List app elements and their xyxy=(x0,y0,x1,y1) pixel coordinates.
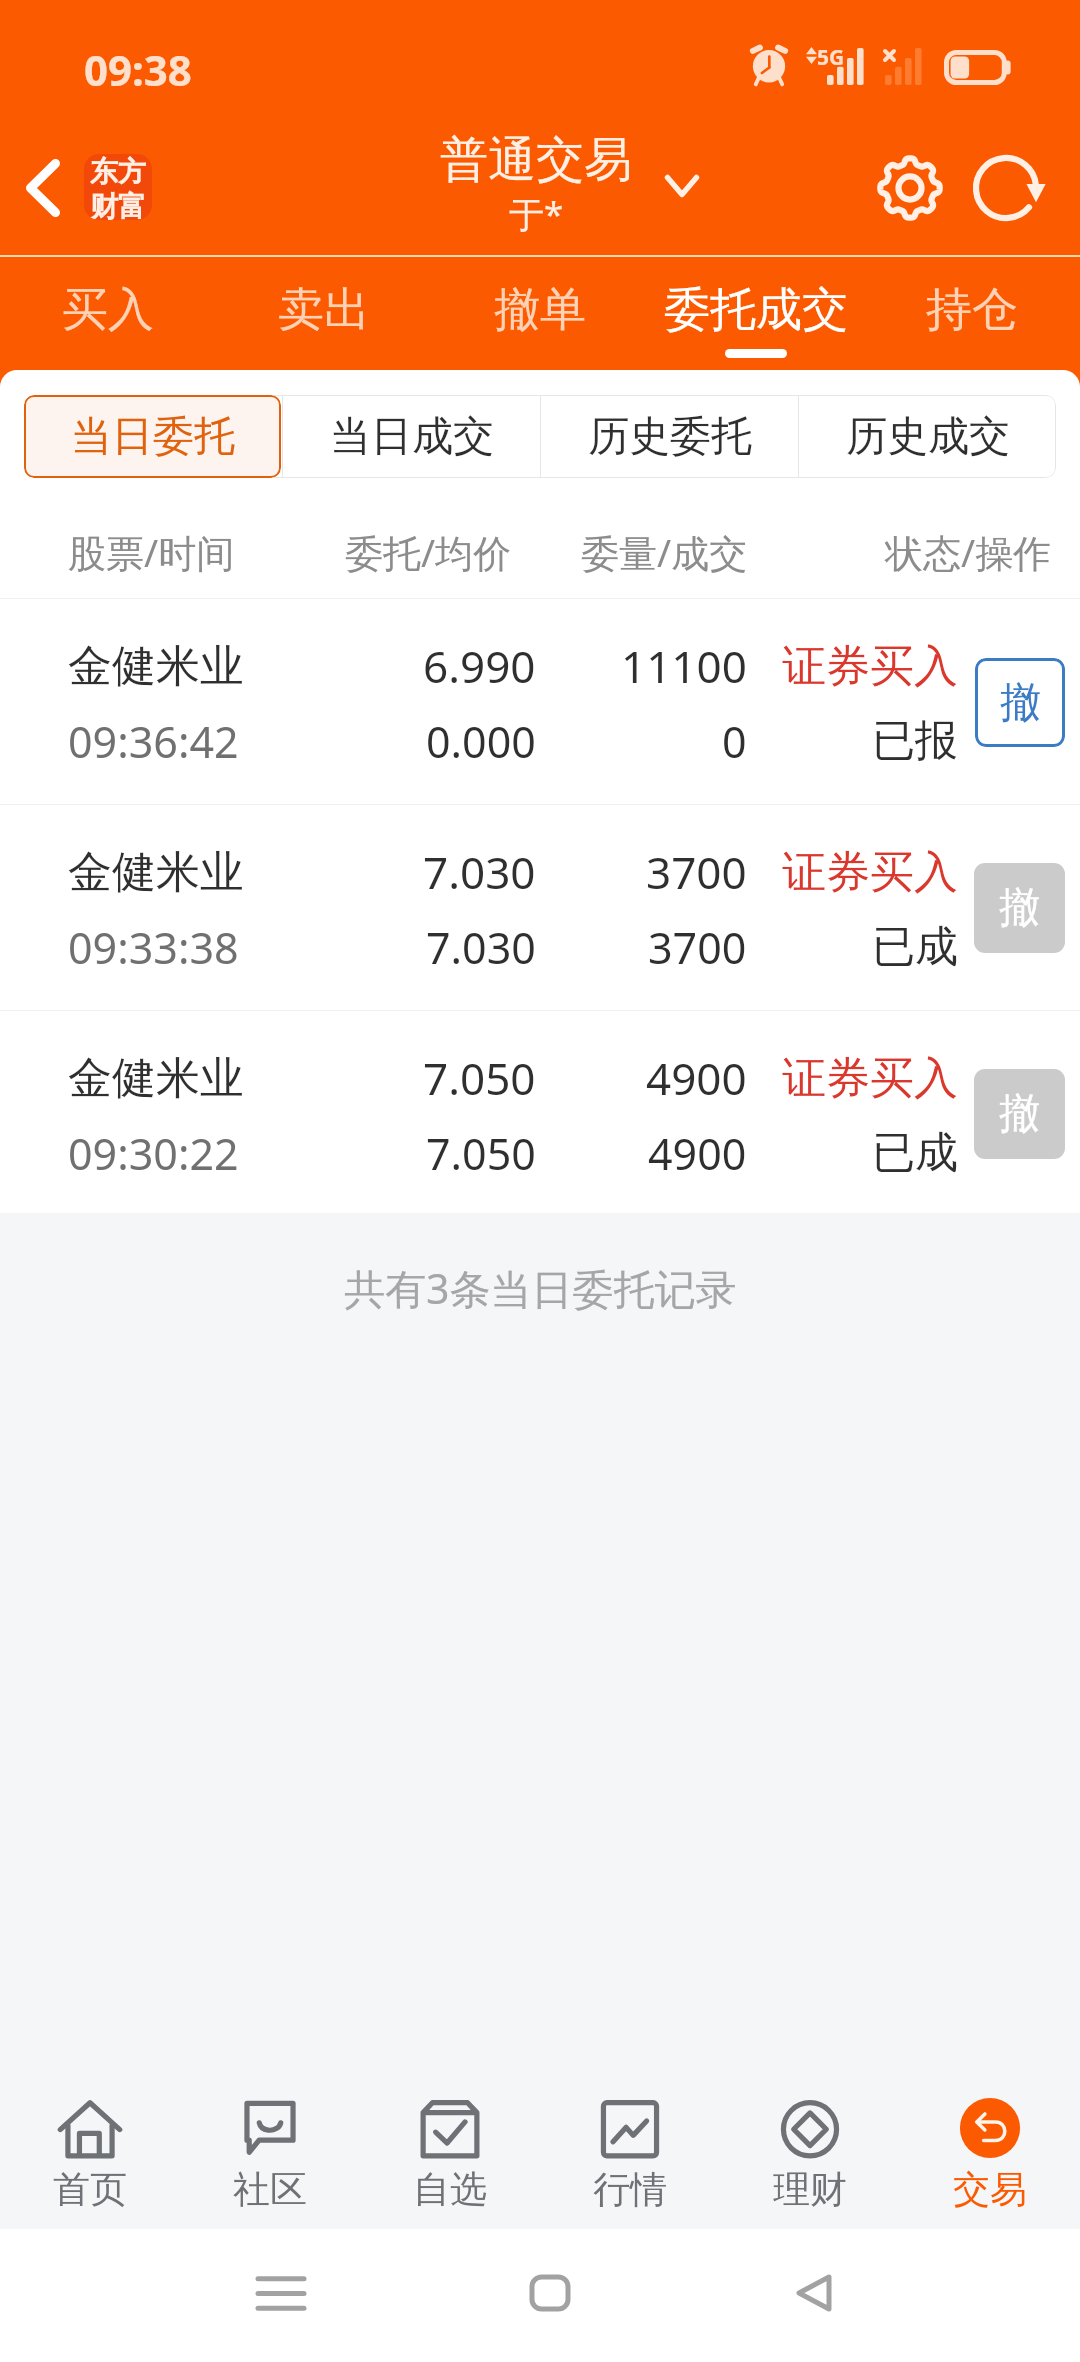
button[interactable]: 东方财富 xyxy=(84,154,152,220)
staticText: 撤 xyxy=(999,1088,1040,1140)
staticText: 3700 xyxy=(648,918,747,977)
staticText: 4900 xyxy=(648,1124,747,1183)
button[interactable]: 历史成交 xyxy=(799,395,1056,478)
button[interactable]: 金健米业 xyxy=(0,805,1080,1010)
button[interactable]: 社区 xyxy=(180,2039,360,2229)
staticText: 撤 xyxy=(999,882,1040,934)
staticText: 自选 xyxy=(413,2166,487,2210)
button[interactable]: 买入 xyxy=(0,257,216,370)
staticText: 5G xyxy=(817,43,845,68)
staticText: 0 xyxy=(722,712,747,771)
staticText: 当日成交 xyxy=(330,411,494,463)
button[interactable]: 历史委托 xyxy=(541,395,798,478)
staticText: 7.050 xyxy=(423,1048,536,1108)
button[interactable]: 撤单 xyxy=(432,257,648,370)
staticText: 买入 xyxy=(62,281,154,339)
staticText: 当日委托 xyxy=(71,411,235,463)
staticText: 金健米业 xyxy=(68,1051,244,1106)
staticText: 于* xyxy=(509,190,564,234)
staticText: 委托成交 xyxy=(664,281,848,339)
button[interactable]: 当日委托 xyxy=(24,395,281,478)
staticText: 3700 xyxy=(646,842,747,902)
button[interactable]: Recents xyxy=(221,2238,341,2348)
button[interactable]: 首页 xyxy=(0,2039,180,2229)
staticText: 历史成交 xyxy=(846,411,1010,463)
staticText: 委托/均价 xyxy=(345,526,512,578)
staticText: 撤单 xyxy=(494,281,586,339)
button[interactable]: 当日成交 xyxy=(283,395,540,478)
staticText: 证券买入 xyxy=(782,845,958,900)
button[interactable]: Switch account xyxy=(648,156,716,216)
staticText: 4900 xyxy=(646,1048,747,1108)
button[interactable]: Back xyxy=(754,2238,874,2348)
button[interactable]: 撤 xyxy=(974,1069,1065,1159)
button[interactable]: 撤 xyxy=(975,658,1065,747)
staticText: 0.000 xyxy=(426,712,536,771)
staticText: 状态/操作 xyxy=(885,526,1052,578)
button[interactable]: 金健米业 xyxy=(0,599,1080,804)
staticText: 共有3条当日委托记录 xyxy=(344,1260,737,1316)
button[interactable]: 撤 xyxy=(974,863,1065,953)
staticText: 金健米业 xyxy=(68,639,244,694)
staticText: 已成 xyxy=(872,920,958,974)
button[interactable]: 金健米业 xyxy=(0,1011,1080,1213)
staticText: 历史委托 xyxy=(588,411,752,463)
button[interactable]: Refresh xyxy=(958,140,1054,236)
button[interactable]: Settings xyxy=(862,140,958,236)
staticText: 持仓 xyxy=(926,281,1018,339)
staticText: 7.050 xyxy=(426,1124,536,1183)
staticText: 东方 xyxy=(90,154,146,189)
staticText: 09:33:38 xyxy=(68,918,239,977)
button[interactable]: Home xyxy=(490,2238,610,2348)
staticText: 财富 xyxy=(90,189,146,220)
button[interactable]: 行情 xyxy=(540,2039,720,2229)
button[interactable]: 理财 xyxy=(720,2039,900,2229)
staticText: 股票/时间 xyxy=(68,526,235,578)
button[interactable]: 普通交易 xyxy=(440,130,632,190)
button[interactable]: 交易 xyxy=(900,2039,1080,2229)
button[interactable]: 持仓 xyxy=(864,257,1080,370)
staticText: 09:30:22 xyxy=(68,1124,239,1183)
button[interactable]: 卖出 xyxy=(216,257,432,370)
staticText: 6.990 xyxy=(423,636,536,696)
staticText: 7.030 xyxy=(426,918,536,977)
staticText: 已成 xyxy=(872,1126,958,1180)
staticText: 证券买入 xyxy=(782,1051,958,1106)
staticText: 09:36:42 xyxy=(68,712,239,771)
staticText: 7.030 xyxy=(423,842,536,902)
staticText: 已报 xyxy=(872,714,958,768)
staticText: 09:38 xyxy=(84,41,192,89)
staticText: 委量/成交 xyxy=(581,526,748,578)
staticText: 行情 xyxy=(593,2166,667,2210)
button[interactable]: Back xyxy=(0,140,86,236)
staticText: 首页 xyxy=(53,2166,127,2210)
staticText: 金健米业 xyxy=(68,845,244,900)
button[interactable] xyxy=(24,395,282,478)
button[interactable]: 委托成交 xyxy=(648,257,864,370)
staticText: 证券买入 xyxy=(782,639,958,694)
staticText: 卖出 xyxy=(278,281,370,339)
staticText: 理财 xyxy=(773,2166,847,2210)
staticText: 社区 xyxy=(233,2166,307,2210)
staticText: 11100 xyxy=(621,636,747,696)
staticText: 交易 xyxy=(953,2166,1027,2210)
button[interactable]: 自选 xyxy=(360,2039,540,2229)
staticText: 撤 xyxy=(1000,677,1041,729)
staticText: 普通交易 xyxy=(440,130,632,190)
